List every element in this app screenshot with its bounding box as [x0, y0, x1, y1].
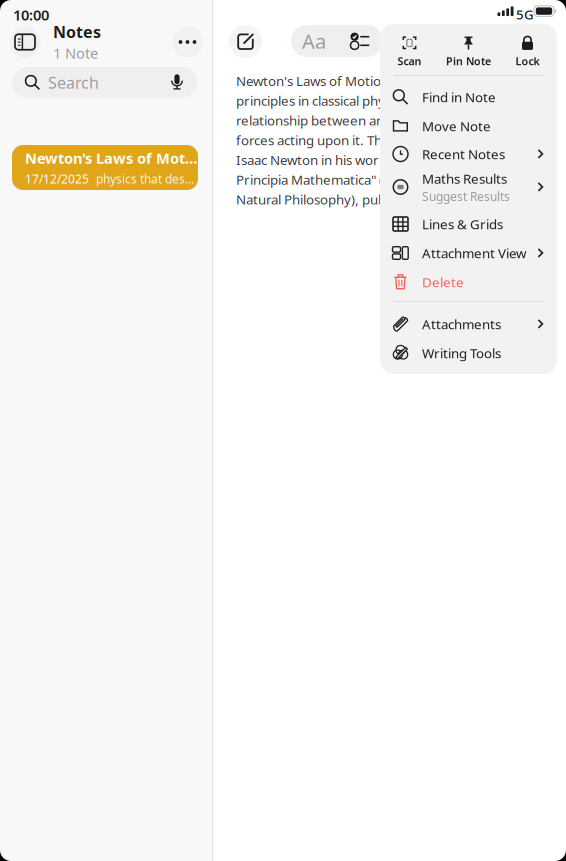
staticText: 1 Note — [53, 43, 98, 63]
staticText: 17/12/2025 — [25, 171, 89, 187]
button[interactable]: Writing Tools — [380, 338, 557, 367]
staticText: Suggest Results — [422, 188, 510, 204]
button[interactable]: Checklist — [337, 25, 383, 57]
button[interactable]: Newton's Laws of Motio... — [12, 145, 198, 190]
button[interactable]: Maths Results — [380, 172, 557, 201]
button[interactable]: Attachment View — [380, 238, 557, 267]
button[interactable]: Find in Note — [380, 82, 557, 111]
button[interactable]: Toggle Sidebar — [7, 24, 43, 60]
staticText: relationship between an object's motion … — [236, 111, 531, 129]
button[interactable]: Search — [12, 67, 197, 98]
staticText: Natural Philosophy), published in 1687. — [236, 190, 475, 208]
staticText: Pin Note — [446, 54, 491, 68]
staticText: Lines & Grids — [422, 215, 503, 233]
button[interactable]: Recent Notes — [380, 139, 557, 168]
button[interactable]: Pin Note — [439, 31, 498, 73]
staticText: 5G — [516, 5, 534, 23]
staticText: Isaac Newton in his work "Philosophiae N… — [236, 151, 529, 169]
button[interactable]: Delete — [380, 267, 557, 296]
staticText: Maths Results — [422, 170, 507, 187]
staticText: Principia Mathematica" (Mathematical Pri… — [236, 171, 544, 188]
button[interactable]: Format — [291, 25, 337, 57]
staticText: Recent Notes — [422, 145, 505, 163]
button[interactable]: Lock — [498, 31, 557, 73]
button[interactable]: More — [171, 25, 204, 58]
button[interactable]: Compose — [227, 23, 264, 60]
staticText: Lock — [515, 54, 539, 68]
button[interactable]: Scan — [380, 31, 439, 73]
button[interactable]: Move Note — [380, 111, 557, 140]
staticText: Attachment View — [422, 244, 526, 262]
staticText: Newton's Laws of Motion are three fundam… — [236, 72, 531, 90]
staticText: Search — [48, 72, 99, 93]
staticText: forces acting upon it. These laws were f… — [236, 131, 558, 149]
staticText: Move Note — [422, 117, 491, 135]
staticText: Find in Note — [422, 88, 496, 106]
staticText: 10:00 — [13, 5, 49, 24]
staticText: Attachments — [422, 315, 501, 333]
staticText: physics that des... — [96, 171, 194, 187]
staticText: Aa — [302, 28, 326, 54]
staticText: Delete — [422, 273, 464, 291]
staticText: Newton's Laws of Motio... — [25, 148, 198, 168]
button[interactable]: Attachments — [380, 309, 557, 338]
staticText: Notes — [53, 21, 101, 42]
button[interactable]: Lines & Grids — [380, 209, 557, 238]
staticText: Writing Tools — [422, 344, 501, 362]
staticText: principles in classical physics that des… — [236, 92, 514, 109]
staticText: Scan — [397, 54, 421, 68]
